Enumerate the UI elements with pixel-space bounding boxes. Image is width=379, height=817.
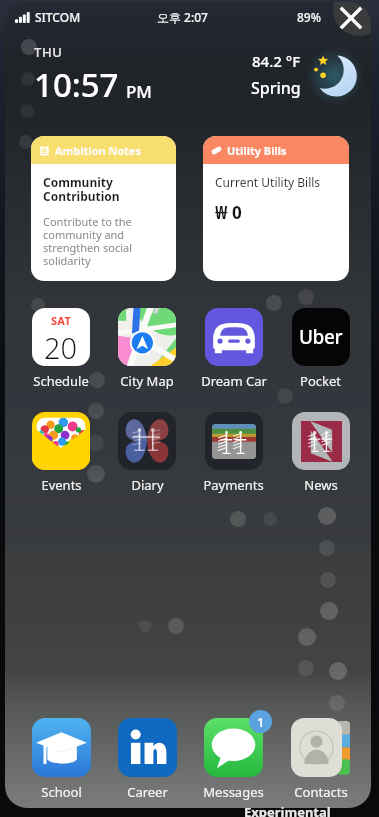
button[interactable]: SAT bbox=[18, 308, 104, 390]
button[interactable]: Diary bbox=[104, 412, 190, 494]
button[interactable]: Payments bbox=[190, 412, 277, 494]
staticText: Pocket Market bbox=[277, 372, 364, 390]
button[interactable]: THU bbox=[34, 43, 152, 107]
staticText: Dream Car bbox=[201, 372, 267, 390]
staticText: ₩ 0 bbox=[215, 201, 242, 224]
staticText: 20 bbox=[44, 328, 78, 366]
staticText: Experimental bbox=[244, 803, 331, 817]
button[interactable]: Dream Car bbox=[190, 308, 277, 390]
button[interactable]: Career bbox=[104, 718, 190, 801]
staticText: Spring bbox=[251, 77, 301, 99]
staticText: Utility Bills bbox=[227, 143, 287, 158]
staticText: Career bbox=[127, 783, 168, 801]
staticText: Ambition Notes bbox=[55, 143, 142, 158]
staticText: Contacts bbox=[294, 783, 348, 801]
staticText: 89% bbox=[297, 9, 321, 25]
staticText: Community Contribution bbox=[43, 174, 120, 205]
staticText: News bbox=[304, 476, 338, 494]
button[interactable]: School bbox=[18, 718, 104, 801]
staticText: THU bbox=[34, 43, 63, 61]
staticText: Current Utility Bills bbox=[215, 174, 321, 190]
button[interactable]: Uber bbox=[277, 308, 364, 390]
staticText: 84.2 °F bbox=[252, 51, 301, 71]
button[interactable]: Ambition Notes bbox=[31, 136, 176, 281]
staticText: PM bbox=[126, 80, 152, 103]
staticText: 10:57 bbox=[34, 62, 119, 107]
staticText: Schedule bbox=[33, 372, 89, 390]
staticText: Diary bbox=[131, 476, 164, 494]
staticText: Messages bbox=[203, 783, 264, 801]
button[interactable]: Close bbox=[333, 2, 371, 36]
staticText: Payments bbox=[203, 476, 264, 494]
staticText: School bbox=[41, 783, 82, 801]
button[interactable]: Events bbox=[18, 412, 104, 494]
button[interactable]: News bbox=[277, 412, 364, 494]
button[interactable]: City Map bbox=[104, 308, 190, 390]
button[interactable]: Utility Bills bbox=[203, 136, 349, 281]
staticText: 오후 2:07 bbox=[157, 9, 208, 25]
staticText: SITCOM bbox=[35, 9, 81, 25]
staticText: 1 bbox=[257, 713, 265, 731]
staticText: Events bbox=[41, 476, 82, 494]
staticText: Contribute to the community and strength… bbox=[43, 214, 169, 268]
staticText: City Map bbox=[120, 372, 174, 390]
button[interactable]: 1 bbox=[190, 718, 277, 801]
staticText: SAT bbox=[51, 313, 72, 328]
button[interactable]: 84.2 °F bbox=[251, 48, 359, 102]
staticText: Uber bbox=[299, 324, 343, 350]
button[interactable]: Contacts bbox=[277, 718, 364, 801]
